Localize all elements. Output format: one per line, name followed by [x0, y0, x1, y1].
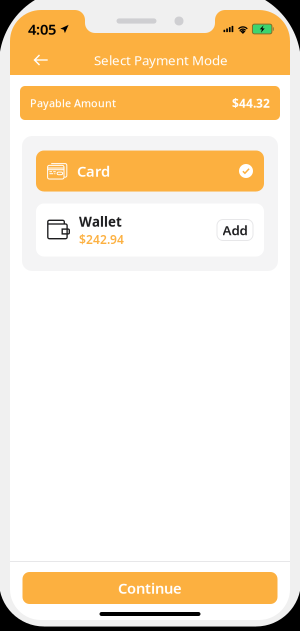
- staticText: Card: [77, 161, 110, 181]
- button[interactable]: Back: [22, 46, 60, 74]
- staticText: $242.94: [79, 231, 124, 247]
- button[interactable]: Continue: [22, 572, 277, 604]
- button[interactable]: Wallet: [36, 203, 264, 256]
- staticText: Wallet: [79, 213, 122, 230]
- staticText: Payable Amount: [30, 96, 116, 110]
- staticText: Continue: [118, 578, 182, 598]
- staticText: Add: [222, 221, 247, 239]
- staticText: 4:05: [28, 19, 56, 39]
- staticText: $44.32: [232, 95, 270, 111]
- button[interactable]: Card: [36, 150, 264, 191]
- staticText: Select Payment Mode: [94, 51, 228, 69]
